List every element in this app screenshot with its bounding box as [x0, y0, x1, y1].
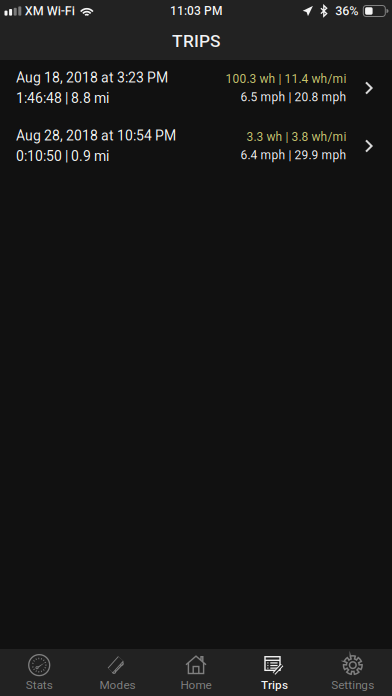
staticText: 3.3 wh | 3.8 wh/mi	[247, 130, 347, 144]
button[interactable]: Settings	[314, 649, 392, 696]
staticText: Home	[180, 678, 211, 692]
staticText: Trips	[261, 678, 288, 692]
staticText: Settings	[331, 678, 374, 692]
button[interactable]: Trips	[235, 649, 314, 696]
staticText: TRIPS	[172, 31, 220, 51]
staticText: 6.4 mph | 29.9 mph	[241, 148, 347, 162]
staticText: XM Wi-Fi	[25, 4, 75, 18]
staticText: 36%	[335, 4, 358, 18]
button[interactable]: Aug 18, 2018 at 3:23 PM	[0, 60, 392, 118]
button[interactable]: Stats	[0, 649, 78, 696]
staticText: 1:46:48 | 8.8 mi	[16, 90, 109, 106]
staticText: Modes	[100, 678, 136, 692]
staticText: 11:03 PM	[170, 4, 222, 18]
staticText: 100.3 wh | 11.4 wh/mi	[226, 72, 347, 86]
staticText: 0:10:50 | 0.9 mi	[16, 148, 109, 164]
staticText: Aug 28, 2018 at 10:54 PM	[16, 128, 176, 144]
staticText: Aug 18, 2018 at 3:23 PM	[16, 70, 168, 86]
staticText: 6.5 mph | 20.8 mph	[241, 90, 347, 104]
button[interactable]: Modes	[78, 649, 157, 696]
staticText: Stats	[26, 678, 53, 692]
button[interactable]: Home	[157, 649, 235, 696]
button[interactable]: Aug 28, 2018 at 10:54 PM	[0, 118, 392, 176]
